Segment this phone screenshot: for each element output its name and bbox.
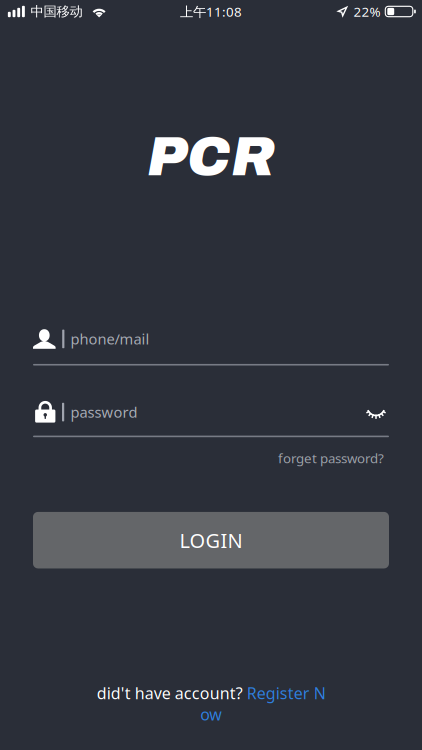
- button[interactable]: LOGIN: [33, 512, 389, 568]
- staticText: 中国移动: [30, 3, 82, 20]
- button[interactable]: password: [33, 401, 363, 423]
- button[interactable]: phone/mail: [33, 329, 389, 365]
- staticText: forget password?: [278, 449, 384, 467]
- staticText: password: [70, 402, 137, 422]
- button[interactable]: forget password?: [278, 449, 389, 467]
- staticText: PCR: [147, 126, 275, 187]
- staticText: 22%: [353, 3, 380, 20]
- staticText: LOGIN: [179, 527, 242, 553]
- staticText: did't have account? Register N​ow: [96, 682, 325, 725]
- staticText: phone/mail: [70, 329, 149, 349]
- staticText: 上午11:08: [180, 3, 242, 20]
- button[interactable]: Show password: [363, 401, 389, 423]
- button[interactable]: did't have account? Register N​ow: [96, 682, 326, 725]
